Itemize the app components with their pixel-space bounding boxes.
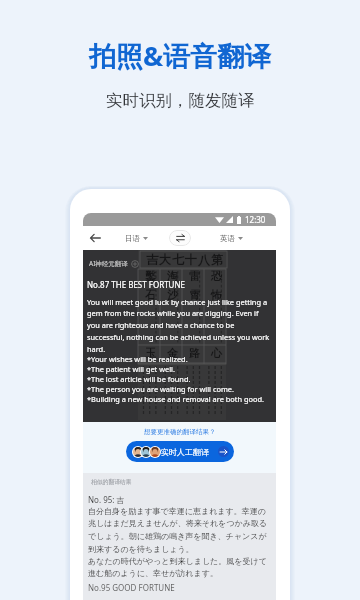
button[interactable]: Back	[88, 231, 102, 245]
staticText: 十	[185, 252, 197, 267]
staticText: 相似的翻译结果	[91, 478, 132, 485]
button[interactable]: 日语	[123, 232, 150, 245]
staticText: 日语	[125, 234, 140, 243]
staticText: 恐	[211, 269, 222, 283]
staticText: 淘	[167, 269, 178, 283]
staticText: 雷	[189, 269, 200, 283]
staticText: No.87 THE BEST FORTUNE	[87, 279, 185, 290]
staticText: あなたの時代がやっと到来しました。風を受けて進む船のように、幸せが訪れます。	[88, 556, 272, 579]
staticText: 金	[167, 346, 178, 360]
button[interactable]: 实时人工翻译	[126, 441, 234, 462]
staticText: 英语	[220, 234, 235, 243]
staticText: 自分自身を励ます事で幸運に恵まれます。幸運の兆しはまだ見えませんが、将来それをつ…	[88, 506, 272, 555]
button[interactable]: Swap languages	[169, 230, 191, 246]
staticText: 实时人工翻译	[161, 447, 209, 457]
staticText: 八	[198, 252, 210, 267]
staticText: You will meet good luck by chance just l…	[87, 297, 272, 354]
staticText: 大	[159, 252, 171, 267]
staticText: 怖	[211, 288, 222, 302]
staticText: *The person you are waiting for will com…	[87, 384, 234, 394]
staticText: 心	[211, 346, 222, 360]
staticText: 玉	[145, 346, 156, 360]
staticText: 七	[172, 252, 184, 267]
staticText: 石	[145, 288, 156, 302]
staticText: AI神经元翻译	[89, 259, 128, 268]
staticText: 鑿	[145, 269, 156, 283]
staticText: 拍照&语音翻译	[89, 37, 272, 74]
staticText: 实时识别，随发随译	[106, 90, 255, 111]
staticText: 第	[211, 252, 223, 267]
staticText: 吉	[146, 252, 158, 267]
staticText: 路	[189, 346, 200, 360]
staticText: 12:30	[245, 214, 266, 225]
staticText: *The patient will get well.	[87, 364, 175, 374]
staticText: 沙	[167, 288, 178, 302]
staticText: 想要更准确的翻译结果？	[144, 428, 216, 436]
staticText: *The lost article will be found.	[87, 374, 191, 384]
staticText: 霄	[189, 288, 200, 302]
staticText: No. 95: 吉	[88, 494, 125, 505]
staticText: *Building a new house and removal are bo…	[87, 394, 264, 404]
staticText: *Your wishes will be realized.	[87, 354, 188, 364]
button[interactable]: 英语	[218, 232, 245, 245]
staticText: No.95 GOOD FORTUNE	[88, 582, 175, 593]
